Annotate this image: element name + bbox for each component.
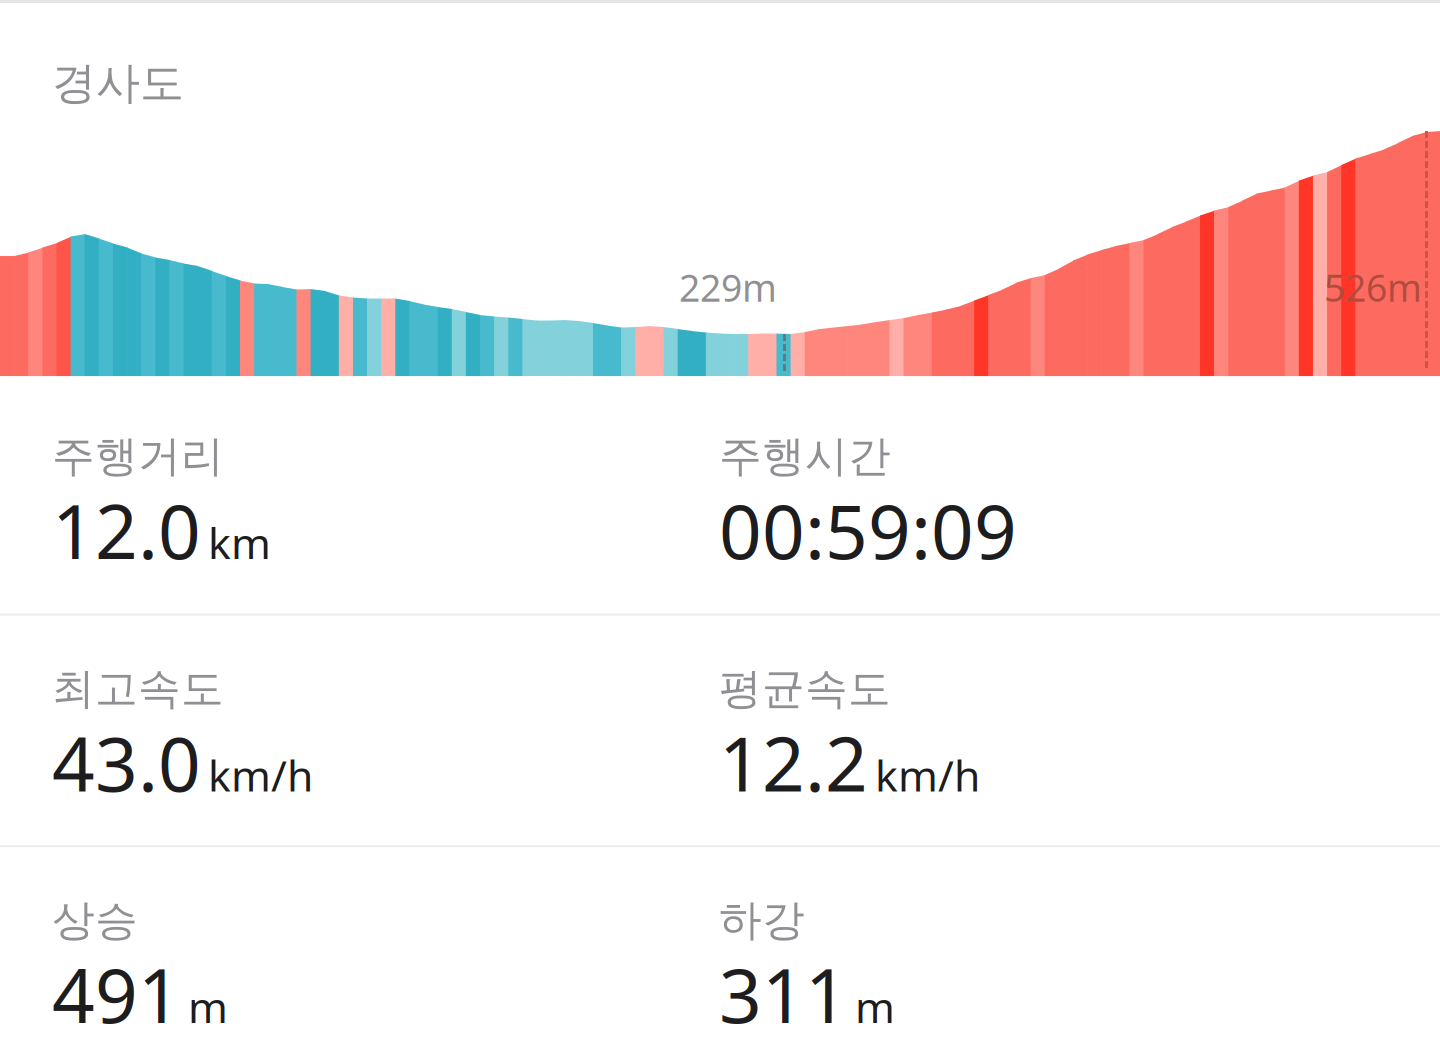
button[interactable]: 주행시간 (719, 430, 1386, 580)
staticText: 12.2 (719, 713, 868, 812)
button[interactable]: 상승 (52, 894, 719, 1044)
button[interactable]: 하강 (719, 894, 1386, 1044)
staticText: 주행시간 (719, 430, 891, 482)
button[interactable]: 최고속도 (52, 663, 719, 812)
staticText: 상승 (52, 894, 138, 947)
staticText: 526m (1324, 262, 1422, 312)
staticText: km (208, 514, 271, 571)
staticText: 하강 (719, 894, 805, 947)
staticText: m (855, 978, 895, 1035)
staticText: 00:59:09 (719, 480, 1017, 580)
staticText: 311 (719, 945, 848, 1044)
staticText: km/h (875, 747, 980, 803)
staticText: 평균속도 (719, 663, 891, 715)
staticText: km/h (208, 747, 313, 803)
staticText: 43.0 (52, 713, 201, 812)
staticText: 491 (52, 945, 181, 1044)
staticText: 주행거리 (52, 430, 224, 482)
button[interactable]: 주행거리 (52, 430, 719, 580)
staticText: m (188, 978, 228, 1035)
staticText: 229m (679, 262, 777, 312)
staticText: 12.0 (52, 480, 201, 580)
button[interactable]: 평균속도 (719, 663, 1386, 812)
staticText: 경사도 (52, 56, 184, 110)
staticText: 최고속도 (52, 663, 224, 715)
